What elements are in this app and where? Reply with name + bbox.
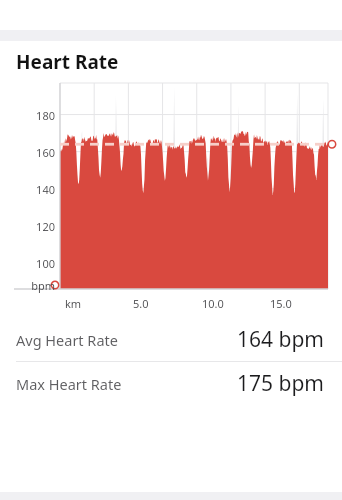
staticText: 10.0 (202, 296, 224, 311)
staticText: Avg Heart Rate (16, 330, 118, 350)
staticText: 140 (14, 182, 55, 197)
button[interactable]: Avg Heart Rate (0, 318, 342, 361)
staticText: 100 (14, 256, 55, 271)
staticText: 5.0 (133, 296, 149, 311)
staticText: 164 bpm (237, 325, 324, 354)
staticText: 120 (14, 219, 55, 234)
staticText: Heart Rate (16, 49, 119, 75)
staticText: 15.0 (270, 296, 292, 311)
staticText: Max Heart Rate (16, 374, 122, 394)
staticText: 160 (14, 145, 55, 160)
staticText: 175 bpm (237, 369, 324, 398)
button[interactable]: Max Heart Rate (0, 362, 342, 405)
staticText: bpm (14, 278, 55, 293)
staticText: km (65, 296, 82, 311)
staticText: 180 (14, 108, 55, 123)
